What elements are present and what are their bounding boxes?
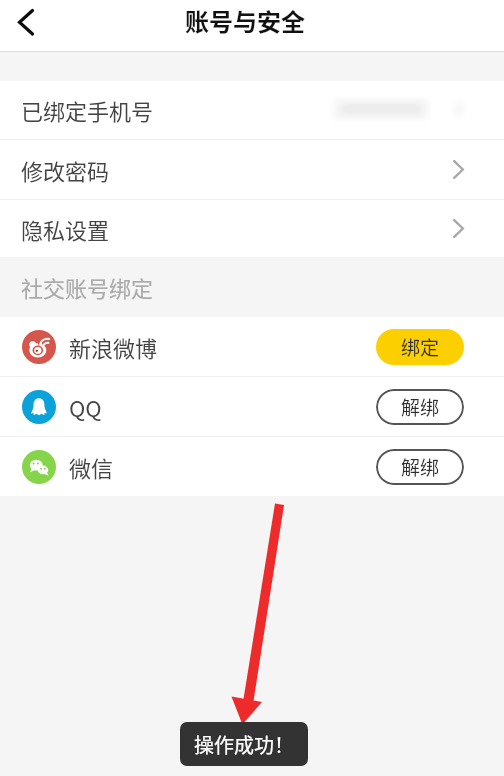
staticText: 操作成功！: [194, 730, 294, 759]
button[interactable]: 隐私设置: [0, 200, 504, 257]
staticText: QQ: [69, 391, 102, 423]
button[interactable]: 绑定: [376, 329, 464, 365]
button[interactable]: QQ: [0, 377, 504, 436]
button[interactable]: 解绑: [376, 449, 464, 485]
button[interactable]: 修改密码: [0, 140, 504, 199]
staticText: 微信: [69, 451, 114, 483]
staticText: 解绑: [401, 393, 440, 421]
staticText: 解绑: [401, 453, 440, 481]
staticText: 修改密码: [21, 154, 110, 186]
button[interactable]: Back: [6, 0, 50, 44]
button[interactable]: 操作成功！: [180, 722, 308, 766]
staticText: 隐私设置: [21, 213, 110, 245]
staticText: 新浪微博: [69, 331, 158, 363]
button[interactable]: 微信: [0, 437, 504, 496]
staticText: 已绑定手机号: [21, 94, 154, 126]
staticText: 绑定: [401, 333, 440, 361]
button[interactable]: 解绑: [376, 389, 464, 425]
staticText: 账号与安全: [185, 3, 305, 38]
button[interactable]: 已绑定手机号: [0, 81, 504, 139]
staticText: 社交账号绑定: [21, 271, 154, 303]
button[interactable]: 新浪微博: [0, 317, 504, 376]
